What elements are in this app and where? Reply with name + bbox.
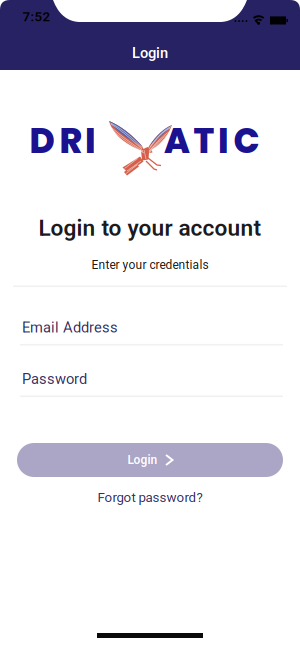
staticText: T [193,117,214,165]
staticText: Login to your account [38,215,261,241]
button[interactable]: Login [17,443,283,477]
button[interactable]: Password [20,371,283,397]
button[interactable]: Email Address [20,319,283,346]
staticText: A [164,117,190,165]
staticText: I [218,117,229,165]
staticText: Password [22,371,87,387]
staticText: Enter your credentials [91,258,208,272]
staticText: R [59,117,82,165]
staticText: 7:52 [22,9,50,24]
staticText: Email Address [22,319,118,336]
button[interactable]: Forgot password? [97,490,202,505]
staticText: Login [127,453,157,467]
staticText: Login [132,45,168,61]
staticText: C [233,117,259,165]
staticText: I [85,117,96,165]
staticText: D [29,117,54,165]
staticText: Forgot password? [97,490,202,505]
